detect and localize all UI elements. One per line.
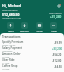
button[interactable]: Amazon Order	[0, 52, 64, 58]
staticText: Transactions	[2, 35, 62, 39]
button[interactable]: Uber Ride	[0, 58, 64, 64]
staticText: Send	[8, 30, 14, 33]
staticText: Spotify Premium	[2, 40, 24, 44]
staticText: -$12.80	[52, 59, 62, 63]
staticText: Total balance	[2, 8, 18, 11]
staticText: Request	[20, 30, 29, 33]
staticText: Uber Ride	[2, 58, 15, 62]
staticText: Salary Payment	[2, 46, 22, 50]
button[interactable]: Send	[6, 22, 15, 33]
staticText: Updated just now	[2, 17, 22, 20]
button[interactable]: Notifications	[55, 2, 62, 9]
button[interactable]: Salary Payment	[0, 46, 64, 52]
button[interactable]: Coffee Shop	[0, 64, 64, 70]
staticText: This month	[49, 11, 62, 14]
button[interactable]: Cards	[35, 22, 44, 33]
staticText: Coffee Shop	[2, 64, 18, 68]
staticText: 12 Mar	[2, 56, 10, 58]
staticText: Hi, Michael	[2, 3, 55, 8]
staticText: Today, 09:24	[2, 44, 16, 46]
staticText: Yesterday	[2, 50, 13, 52]
button[interactable]: Request	[20, 22, 29, 33]
staticText: $12,480.50	[2, 12, 20, 17]
staticText: Amazon Order	[2, 52, 21, 56]
staticText: -$9.99	[54, 41, 62, 45]
staticText: 11 Mar	[2, 62, 10, 64]
staticText: +$1,240	[50, 15, 62, 19]
staticText: 10 Mar	[2, 68, 10, 70]
staticText: Cards	[36, 30, 43, 33]
button[interactable]: Spotify Premium	[0, 40, 64, 46]
staticText: More	[51, 30, 57, 33]
staticText: -$54.20	[52, 53, 62, 57]
staticText: +$3,200	[52, 47, 62, 51]
staticText: -$4.50	[54, 65, 62, 69]
button[interactable]: More	[49, 22, 58, 33]
